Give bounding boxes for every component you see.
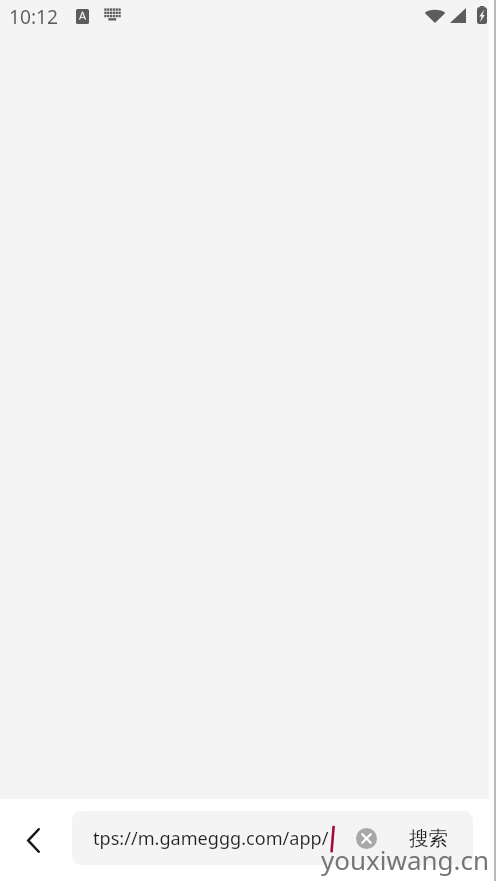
button[interactable]: Clear text <box>345 811 387 865</box>
staticText: youxiwang.cn <box>321 842 490 877</box>
staticText: tps://m.gameggg.com/app/ <box>93 826 329 851</box>
button[interactable]: 搜索 <box>400 811 456 865</box>
button[interactable]: Back <box>2 799 64 881</box>
staticText: 10:12 <box>9 3 59 29</box>
staticText: 搜索 <box>409 826 448 851</box>
button[interactable]: tps://m.gameggg.com/app/ <box>72 811 473 865</box>
